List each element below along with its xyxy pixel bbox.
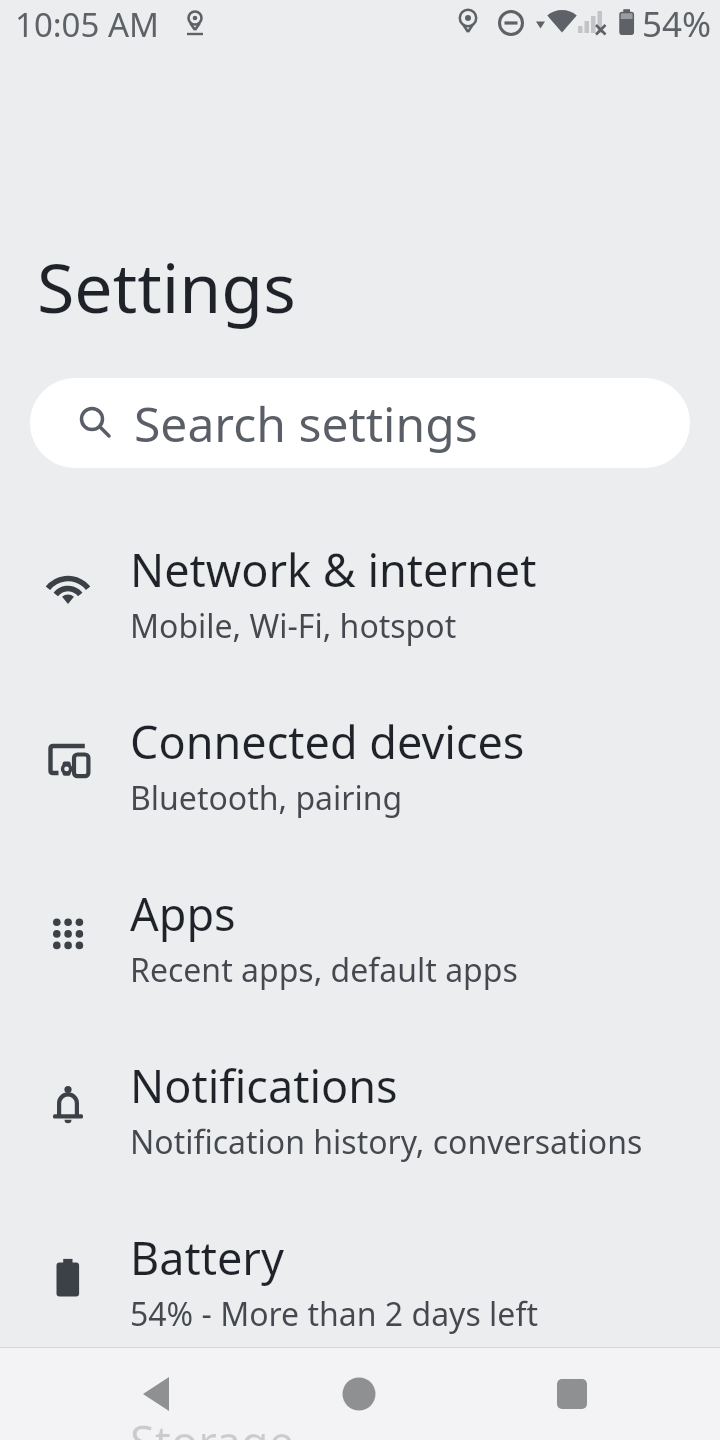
button[interactable]: Notifications: [0, 1026, 720, 1198]
button[interactable]: Search settings: [30, 378, 690, 468]
staticText: Recent apps, default apps: [130, 948, 518, 992]
button[interactable]: Storage: [0, 1382, 720, 1440]
staticText: Connected devices: [130, 711, 525, 772]
button[interactable]: Battery: [0, 1198, 720, 1370]
staticText: Battery: [130, 1227, 284, 1288]
staticText: Settings: [37, 240, 296, 333]
button[interactable]: [323, 1358, 395, 1430]
staticText: Network & internet: [130, 539, 537, 600]
staticText: Search settings: [134, 391, 478, 456]
staticText: Notifications: [130, 1055, 398, 1116]
button[interactable]: Apps: [0, 854, 720, 1026]
button[interactable]: Network & internet: [0, 510, 720, 682]
staticText: Storage: [130, 1411, 295, 1440]
staticText: 10:05 AM: [15, 2, 159, 47]
button[interactable]: [120, 1358, 192, 1430]
staticText: Bluetooth, pairing: [130, 776, 403, 820]
staticText: 54%: [642, 0, 712, 48]
button[interactable]: Connected devices: [0, 682, 720, 854]
staticText: Notification history, conversations: [130, 1120, 643, 1164]
staticText: Apps: [130, 883, 236, 944]
staticText: 54% - More than 2 days left: [130, 1292, 538, 1336]
staticText: Mobile, Wi-Fi, hotspot: [130, 604, 457, 648]
button[interactable]: [536, 1358, 608, 1430]
